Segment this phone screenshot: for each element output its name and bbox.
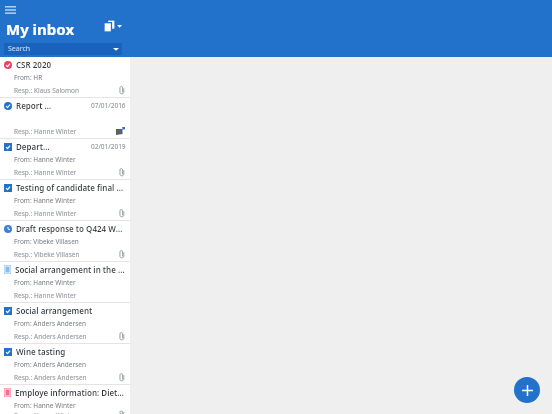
- staticText: Resp.: Hanne Winter: [14, 127, 77, 136]
- staticText: From: Hanne Winter: [14, 155, 76, 164]
- staticText: From: Hanne Winter: [14, 196, 76, 205]
- staticText: Search: [8, 44, 31, 54]
- staticText: From: Vibeke Villasen: [14, 237, 79, 246]
- staticText: Resp.: Anders Andersen: [14, 373, 87, 382]
- staticText: From: Hanne Winter: [14, 401, 76, 410]
- staticText: From: HR: [14, 73, 43, 82]
- button[interactable]: Department meeting Q1…: [0, 139, 130, 180]
- staticText: Department meeting Q1…: [16, 141, 53, 152]
- staticText: Wine tasting: [16, 346, 66, 357]
- button[interactable]: CSR 2020: [0, 57, 130, 98]
- staticText: Testing of candidate final round: [16, 182, 126, 193]
- staticText: Resp.: Hanne Winter: [14, 209, 77, 218]
- button[interactable]: Create new: [514, 377, 540, 403]
- staticText: From: Anders Andersen: [14, 360, 87, 369]
- button[interactable]: Search: [4, 43, 122, 55]
- button[interactable]: Social arrangement in the unit: [0, 262, 130, 303]
- staticText: Resp.: Hanne Winter: [14, 168, 77, 177]
- button[interactable]: Report from support: [0, 98, 130, 139]
- button[interactable]: Wine tasting: [0, 344, 130, 385]
- button[interactable]: Employe information: Dieter David…: [0, 385, 130, 414]
- staticText: From: Anders Andersen: [14, 319, 87, 328]
- staticText: CSR 2020: [16, 59, 52, 70]
- button[interactable]: Testing of candidate final round: [0, 180, 130, 221]
- button[interactable]: Menu: [3, 3, 17, 17]
- staticText: Employe information: Dieter David…: [15, 387, 126, 398]
- button[interactable]: Draft response to Q424 Whether c…: [0, 221, 130, 262]
- staticText: 07/01/2016: [91, 101, 126, 110]
- staticText: From: Hanne Winter: [14, 278, 76, 287]
- staticText: Resp.: Klaus Salomon: [14, 86, 80, 95]
- staticText: Social arrangement in the unit: [15, 264, 126, 275]
- staticText: Social arrangement: [16, 305, 93, 316]
- staticText: Resp.: Hanne Winter: [14, 411, 77, 414]
- staticText: Resp.: Vibeke Villasen: [14, 250, 80, 259]
- staticText: My inbox: [6, 19, 75, 39]
- button[interactable]: Social arrangement: [0, 303, 130, 344]
- staticText: Resp.: Anders Andersen: [14, 332, 87, 341]
- staticText: Resp.: Hanne Winter: [14, 291, 77, 300]
- staticText: Report from support: [16, 100, 53, 111]
- button[interactable]: Folder options: [104, 20, 122, 32]
- staticText: 02/01/2019: [91, 142, 126, 151]
- staticText: Draft response to Q424 Whether c…: [16, 223, 126, 234]
